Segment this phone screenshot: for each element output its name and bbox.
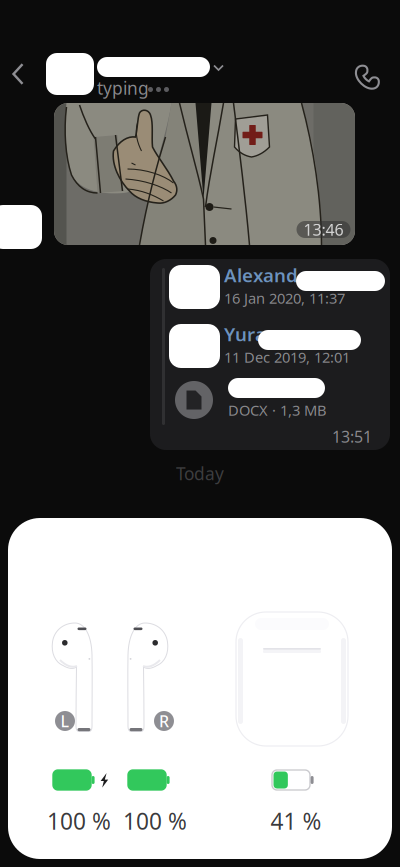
staticText: Today [176, 462, 224, 485]
staticText: 11 Dec 2019, 12:01 [224, 347, 350, 367]
button[interactable]: Photo message [54, 103, 355, 245]
button[interactable]: typing [42, 52, 232, 96]
staticText: L [60, 710, 69, 732]
staticText: 100 % [47, 806, 111, 836]
staticText: typing [97, 76, 149, 99]
staticText: R [159, 710, 169, 732]
staticText: 13:51 [332, 426, 372, 447]
staticText: 100 % [123, 806, 187, 836]
button[interactable]: Call [345, 55, 389, 99]
staticText: 16 Jan 2020, 11:37 [224, 288, 345, 308]
staticText: 13:46 [303, 219, 343, 240]
staticText: DOCX · 1,3 MB [228, 400, 327, 420]
staticText: 41 % [270, 806, 321, 836]
staticText: Yura [224, 322, 266, 346]
staticText: Alexande [224, 263, 309, 287]
button[interactable]: Back [1, 52, 35, 96]
